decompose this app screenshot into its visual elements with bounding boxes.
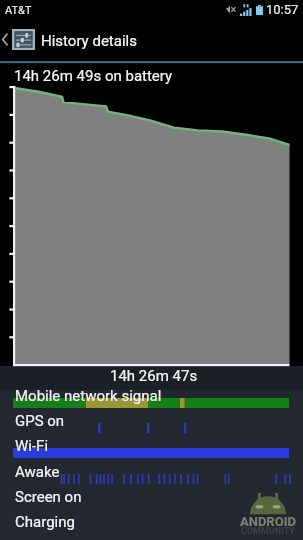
staticText: Mobile network signal [15,387,162,405]
staticText: 14h 26m 49s on battery [14,67,173,85]
staticText: GPS on [15,412,65,430]
button[interactable]: Screen on [0,487,303,512]
button[interactable]: Awake [0,462,303,487]
staticText: History details [41,32,137,50]
staticText: COMMUNITY [241,526,295,537]
button[interactable]: GPS on [0,411,303,436]
staticText: ANDROID [240,514,296,529]
staticText: Awake [15,463,60,481]
staticText: Screen on [15,488,82,506]
button[interactable]: Navigate up [0,18,303,61]
other: Navigate up [2,33,8,46]
button[interactable]: Mobile network signal [0,386,303,411]
staticText: 10:57 [266,2,299,17]
staticText: Wi-Fi [15,437,49,455]
button[interactable]: Wi-Fi [0,436,303,461]
button[interactable]: Charging [0,512,303,537]
staticText: Charging [15,513,75,531]
staticText: 14h 26m 47s [110,367,198,385]
staticText: AT&T [5,4,32,17]
